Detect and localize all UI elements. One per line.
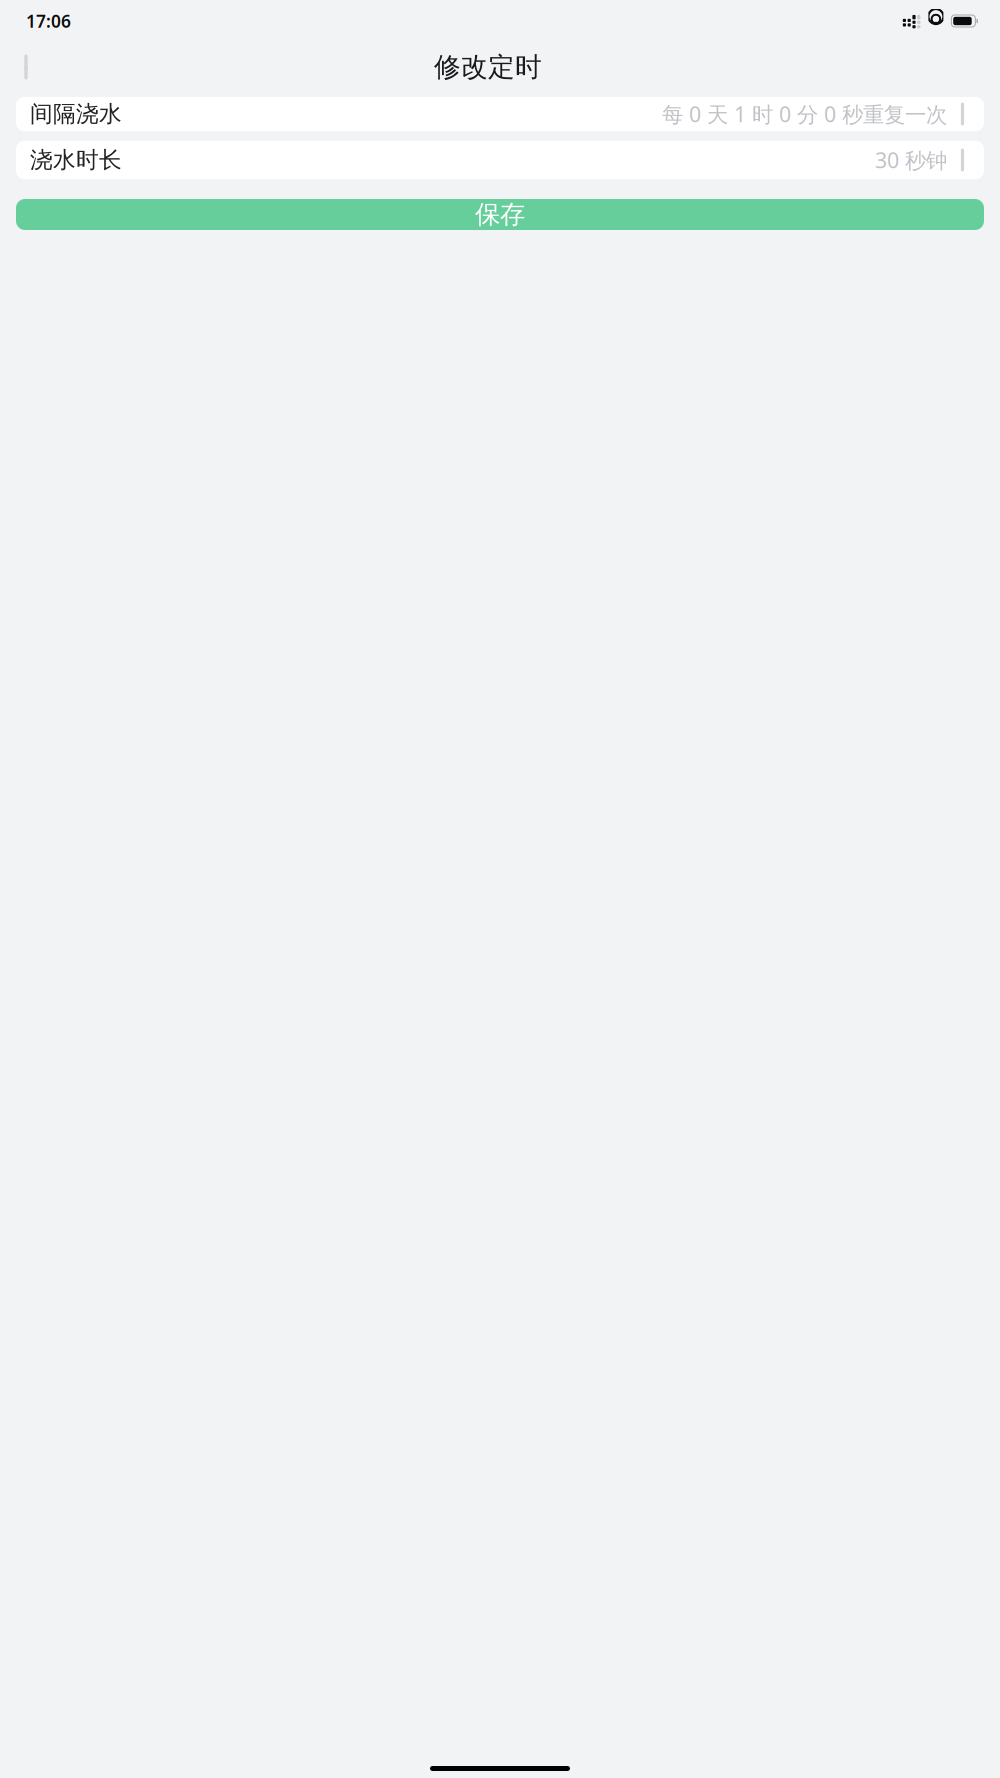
button[interactable]: 返回 [4,45,48,89]
staticText: 修改定时 [434,51,542,83]
staticText: 浇水时长 [30,146,122,174]
staticText: 17:06 [26,9,71,32]
staticText: 30 秒钟 [875,146,947,174]
staticText: 每 0 天 1 时 0 分 0 秒重复一次 [662,100,947,128]
button[interactable]: 保存 [16,199,984,230]
button[interactable]: 间隔浇水 [16,97,984,131]
button[interactable]: 浇水时长 [16,141,984,179]
staticText: 保存 [475,199,525,230]
staticText: 间隔浇水 [30,100,122,128]
